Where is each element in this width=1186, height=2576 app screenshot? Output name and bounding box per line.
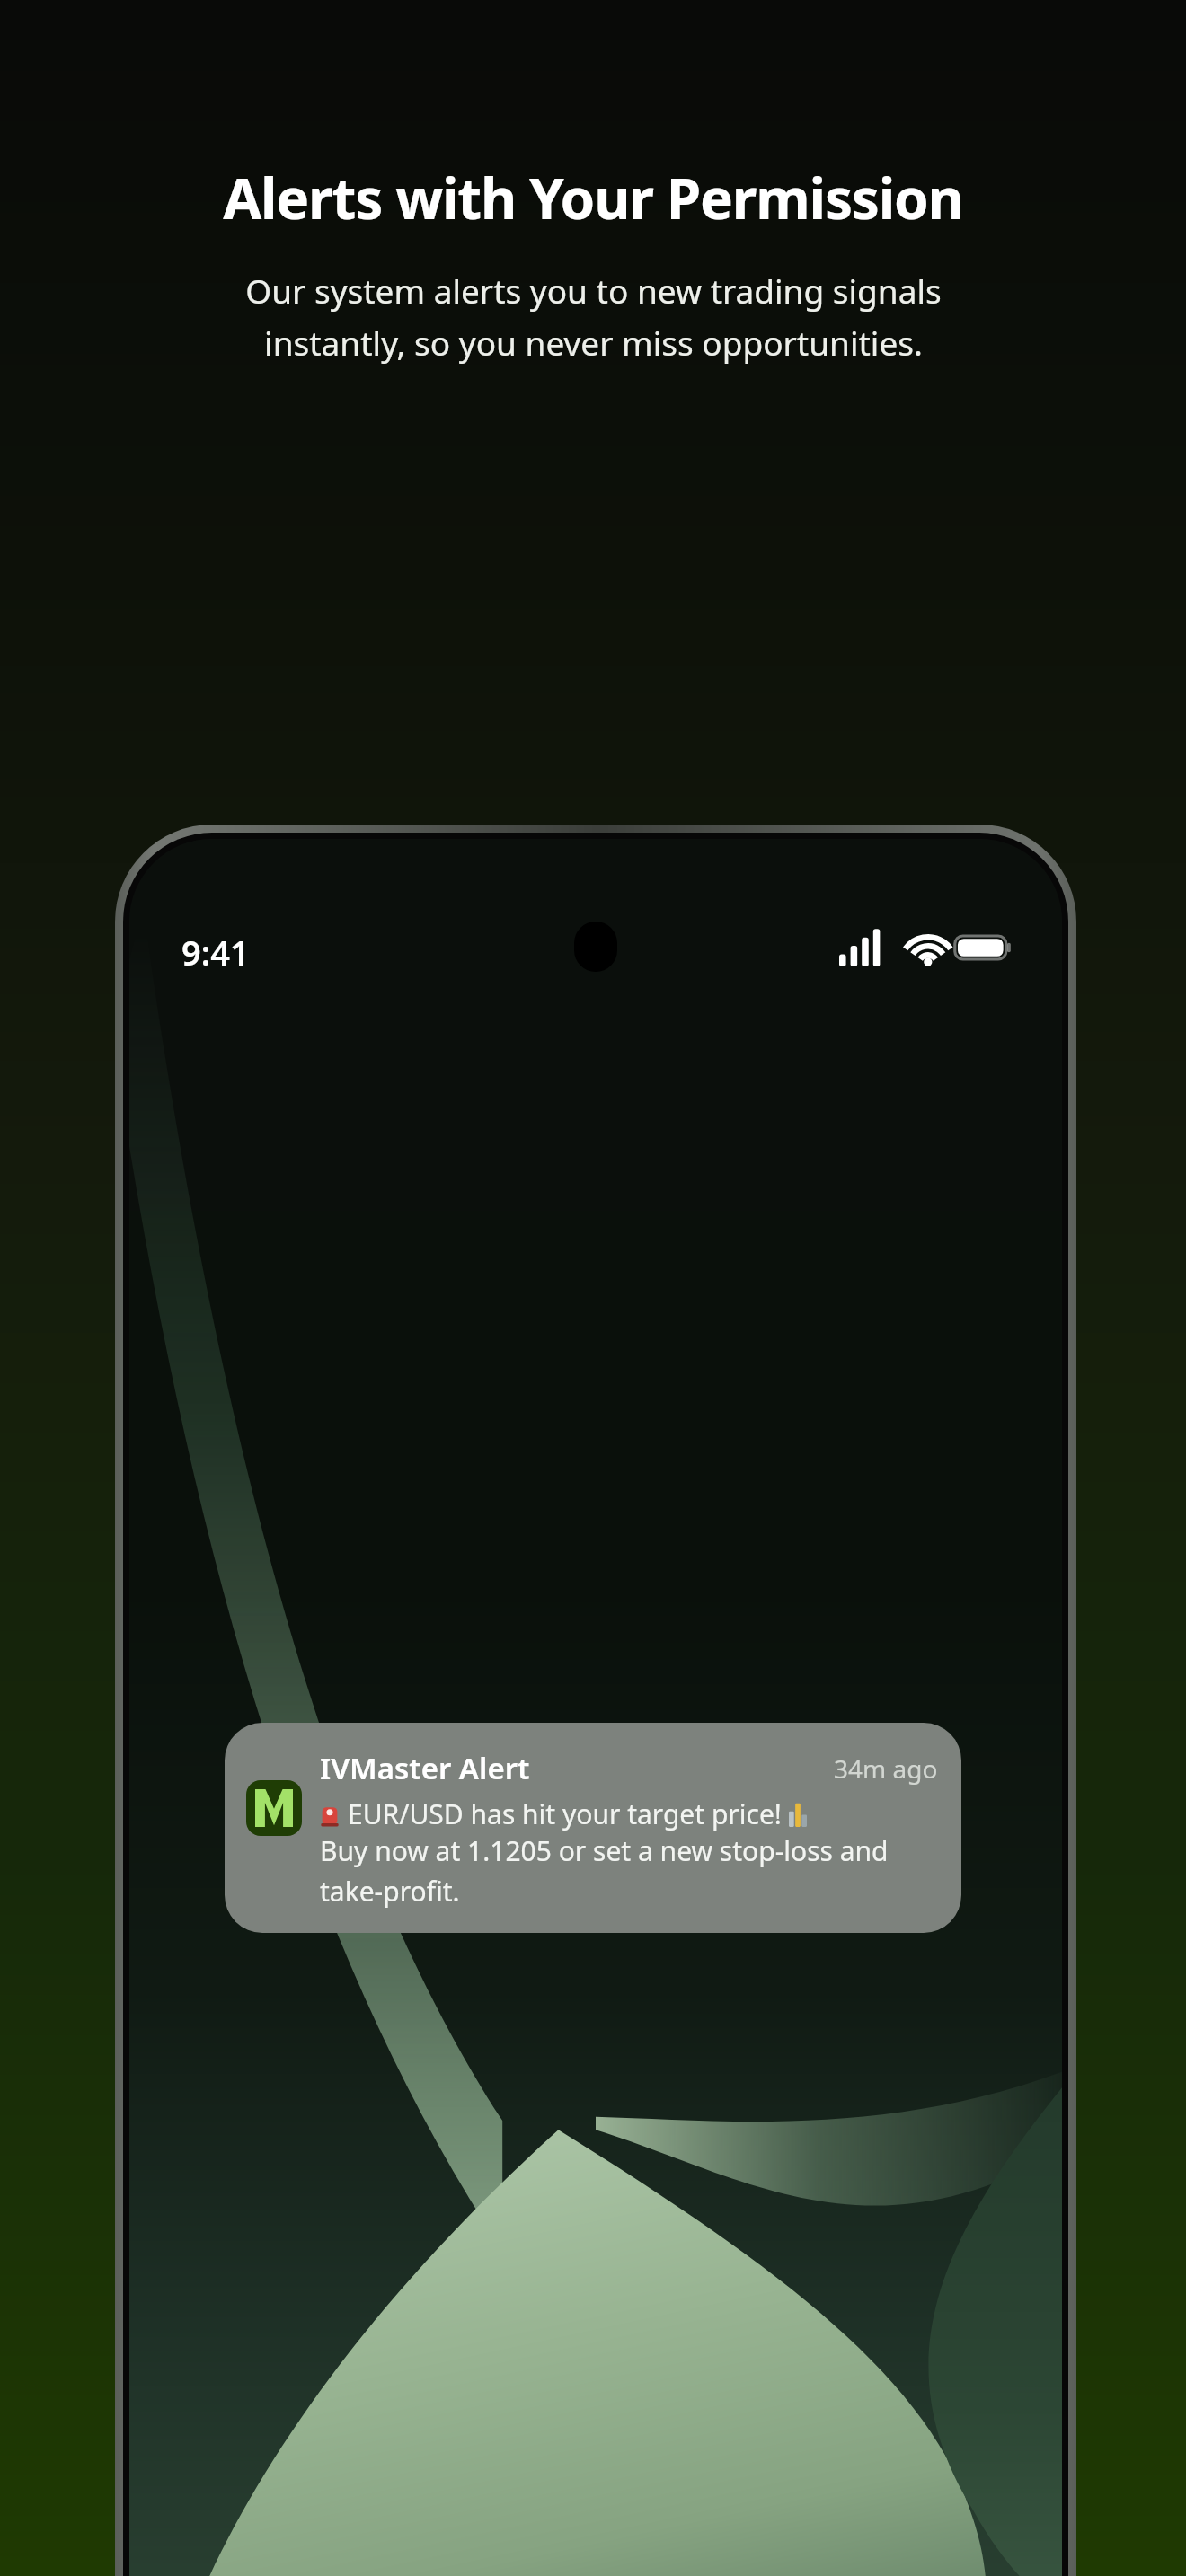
- staticText: IVMaster Alert: [320, 1748, 530, 1788]
- staticText: Alerts with Your Permission: [223, 160, 963, 235]
- staticText: 9:41: [181, 929, 250, 975]
- staticText: EUR/USD has hit your target price!: [348, 1795, 782, 1832]
- staticText: Our system alerts you to new trading sig…: [245, 268, 942, 365]
- staticText: Buy now at 1.1205 or set a new stop-loss…: [320, 1832, 889, 1909]
- button[interactable]: IVMaster Alert: [225, 1723, 961, 1933]
- staticText: 34m ago: [834, 1751, 938, 1786]
